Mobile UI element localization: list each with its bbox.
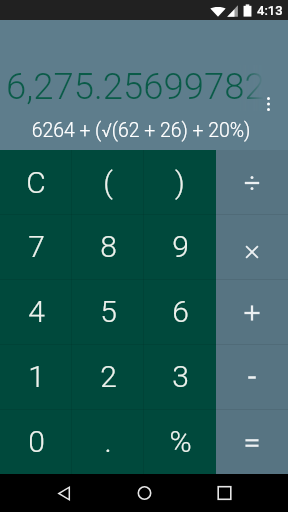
staticText: ( — [103, 165, 113, 200]
button[interactable]: 2 — [72, 344, 144, 409]
button[interactable]: Home — [120, 474, 168, 512]
button[interactable]: 6 — [144, 279, 216, 344]
staticText: C — [26, 165, 46, 200]
staticText: 1 — [28, 359, 45, 394]
staticText: 7 — [28, 229, 45, 264]
staticText: 2 — [100, 359, 117, 394]
button[interactable]: Back — [40, 474, 88, 512]
button[interactable]: Plus — [216, 279, 288, 344]
staticText: 4:13 — [257, 3, 283, 18]
button[interactable]: 3 — [144, 344, 216, 409]
button[interactable]: C — [0, 150, 72, 214]
button[interactable]: 5 — [72, 279, 144, 344]
button[interactable]: 4 — [0, 279, 72, 344]
staticText: . — [104, 424, 112, 459]
staticText: 3 — [172, 359, 189, 394]
button[interactable]: 8 — [72, 214, 144, 279]
button[interactable]: ) — [144, 150, 216, 214]
staticText: 6264 + (√(62 + 26) + 20%) — [0, 119, 282, 142]
button[interactable]: 7 — [0, 214, 72, 279]
button[interactable]: More options — [256, 88, 280, 120]
button[interactable]: Minus — [216, 344, 288, 409]
staticText: ) — [175, 165, 185, 200]
button[interactable]: % — [144, 409, 216, 474]
button[interactable]: Divide — [216, 150, 288, 214]
button[interactable]: Recents — [200, 474, 248, 512]
staticText: 0 — [28, 424, 45, 459]
button[interactable]: . — [72, 409, 144, 474]
staticText: 6,275.25699782 — [6, 65, 265, 108]
staticText: 9 — [172, 229, 189, 264]
button[interactable]: 0 — [0, 409, 72, 474]
staticText: 5 — [100, 294, 117, 329]
button[interactable]: Multiply — [216, 214, 288, 279]
button[interactable]: 9 — [144, 214, 216, 279]
staticText: % — [169, 424, 192, 459]
button[interactable]: ( — [72, 150, 144, 214]
staticText: 6 — [172, 294, 189, 329]
button[interactable]: 1 — [0, 344, 72, 409]
staticText: 8 — [100, 229, 117, 264]
staticText: 4 — [28, 294, 45, 329]
button[interactable]: Equals — [216, 409, 288, 474]
